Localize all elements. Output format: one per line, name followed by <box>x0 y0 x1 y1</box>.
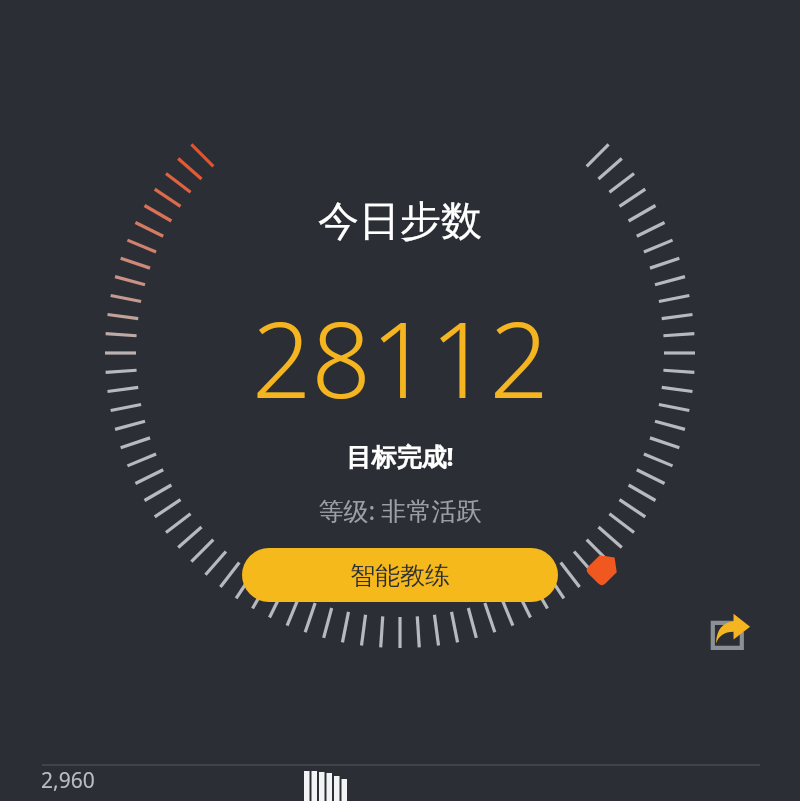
staticText: 智能教练 <box>350 560 450 591</box>
staticText: 今日步数 <box>318 196 482 248</box>
button[interactable]: 智能教练 <box>242 548 558 602</box>
staticText: 28112 <box>252 287 549 429</box>
staticText: 2,960 <box>41 766 95 795</box>
button[interactable]: Share <box>700 606 756 662</box>
staticText: 目标完成! <box>346 439 454 473</box>
staticText: 等级: 非常活跃 <box>318 493 482 527</box>
